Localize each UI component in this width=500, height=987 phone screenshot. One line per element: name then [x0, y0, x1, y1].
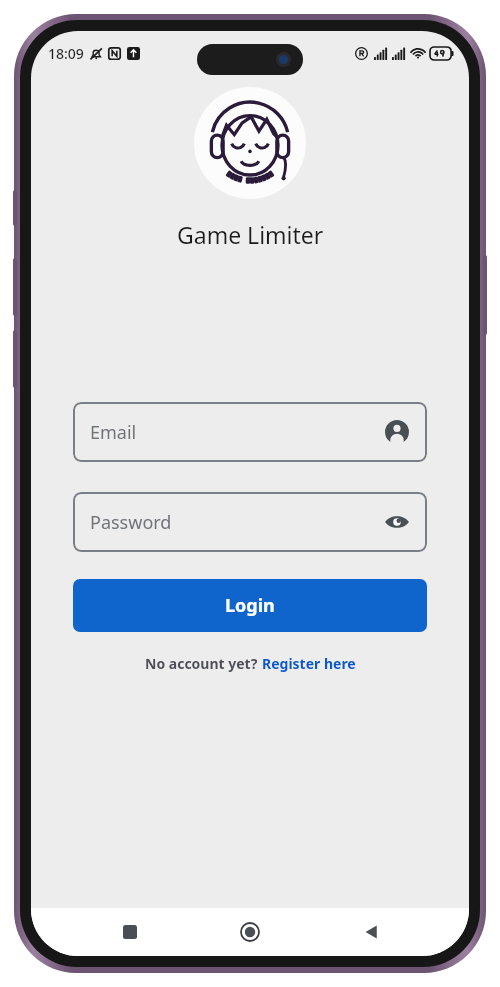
staticText: Game Limiter: [177, 219, 324, 250]
other: Account: [384, 419, 410, 445]
button[interactable]: Back: [349, 910, 393, 954]
staticText: Register here: [262, 654, 356, 673]
button[interactable]: Password: [73, 492, 427, 552]
staticText: Email: [90, 420, 384, 445]
button[interactable]: Login: [73, 579, 427, 632]
staticText: Login: [225, 593, 275, 618]
button[interactable]: Email: [73, 402, 427, 462]
button[interactable]: Recent apps: [108, 910, 152, 954]
staticText: No account yet?: [145, 654, 262, 673]
staticText: 18:09: [48, 44, 84, 63]
other: Show password: [384, 509, 410, 535]
button[interactable]: Register here: [262, 654, 356, 673]
button[interactable]: Home: [228, 910, 272, 954]
staticText: Password: [90, 510, 384, 535]
